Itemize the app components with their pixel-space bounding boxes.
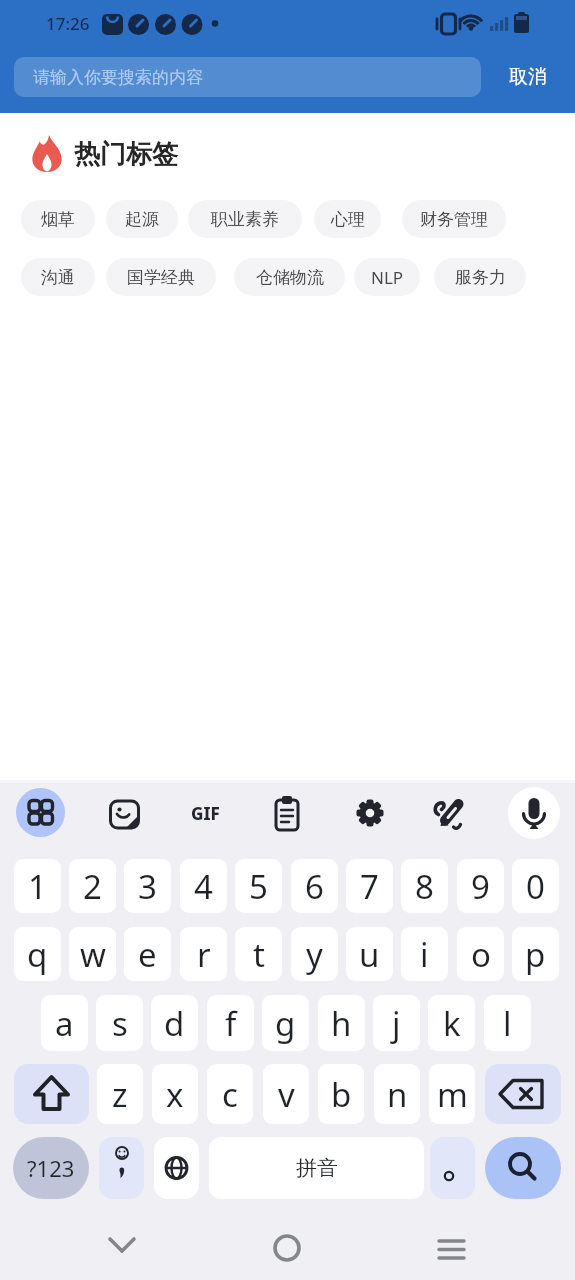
button[interactable]: u xyxy=(346,927,393,981)
staticText: 17:26 xyxy=(46,12,90,34)
button[interactable] xyxy=(508,787,560,839)
button[interactable]: d xyxy=(151,995,198,1051)
button[interactable]: 0 xyxy=(512,859,559,913)
staticText: 起源 xyxy=(125,209,159,230)
staticText: 8 xyxy=(415,864,434,909)
button[interactable] xyxy=(355,798,385,828)
staticText: 0 xyxy=(526,864,545,909)
button[interactable]: 财务管理 xyxy=(402,200,506,238)
button[interactable]: 7 xyxy=(346,859,393,913)
button[interactable]: 起源 xyxy=(106,200,178,238)
button[interactable] xyxy=(430,1137,475,1199)
button[interactable]: 服务力 xyxy=(434,258,526,296)
staticText: q xyxy=(27,932,48,977)
button[interactable]: v xyxy=(263,1064,309,1124)
button[interactable]: e xyxy=(124,927,171,981)
staticText: g xyxy=(275,1001,296,1046)
button[interactable] xyxy=(485,1064,561,1124)
staticText: 仓储物流 xyxy=(256,267,324,288)
button[interactable]: f xyxy=(207,995,254,1051)
button[interactable]: h xyxy=(318,995,365,1051)
button[interactable]: 心理 xyxy=(314,200,381,238)
button[interactable]: w xyxy=(69,927,116,981)
button[interactable]: i xyxy=(401,927,448,981)
button[interactable]: t xyxy=(235,927,282,981)
button[interactable]: NLP xyxy=(354,258,420,296)
button[interactable]: b xyxy=(318,1064,364,1124)
button[interactable]: l xyxy=(484,995,531,1051)
button[interactable]: 仓储物流 xyxy=(234,258,345,296)
button[interactable]: GIF xyxy=(180,795,230,832)
button[interactable]: c xyxy=(207,1064,253,1124)
button[interactable]: g xyxy=(262,995,309,1051)
button[interactable]: s xyxy=(96,995,143,1051)
button[interactable]: j xyxy=(373,995,420,1051)
staticText: p xyxy=(525,932,546,977)
button[interactable] xyxy=(270,793,304,834)
button[interactable] xyxy=(106,795,143,832)
button[interactable]: x xyxy=(152,1064,198,1124)
staticText: c xyxy=(222,1072,238,1117)
button[interactable] xyxy=(99,1137,144,1199)
button[interactable]: a xyxy=(41,995,88,1051)
button[interactable]: 8 xyxy=(401,859,448,913)
button[interactable]: 5 xyxy=(235,859,282,913)
button[interactable] xyxy=(14,1064,89,1124)
button[interactable]: ?123 xyxy=(13,1137,89,1199)
staticText: 取消 xyxy=(509,65,547,89)
staticText: t xyxy=(253,932,265,977)
button[interactable]: r xyxy=(180,927,227,981)
button[interactable] xyxy=(485,1137,561,1199)
button[interactable]: m xyxy=(429,1064,475,1124)
button[interactable]: 请输入你要搜索的内容 xyxy=(14,57,481,97)
staticText: u xyxy=(359,932,380,977)
button[interactable]: 沟通 xyxy=(21,258,95,296)
button[interactable]: 取消 xyxy=(494,57,562,97)
staticText: 7 xyxy=(360,864,379,909)
staticText: 3 xyxy=(138,864,157,909)
staticText: 5 xyxy=(249,864,268,909)
button[interactable] xyxy=(97,1221,147,1271)
button[interactable]: 3 xyxy=(124,859,171,913)
button[interactable] xyxy=(427,1221,477,1271)
button[interactable]: y xyxy=(291,927,338,981)
button[interactable]: 9 xyxy=(457,859,504,913)
staticText: v xyxy=(278,1072,295,1117)
staticText: j xyxy=(392,1001,401,1046)
button[interactable] xyxy=(262,1221,312,1271)
staticText: 请输入你要搜索的内容 xyxy=(33,67,203,88)
button[interactable]: o xyxy=(457,927,504,981)
staticText: r xyxy=(197,932,211,977)
button[interactable] xyxy=(432,793,468,835)
staticText: 9 xyxy=(471,864,490,909)
staticText: NLP xyxy=(371,266,404,289)
staticText: e xyxy=(138,932,157,977)
button[interactable]: 国学经典 xyxy=(106,258,216,296)
button[interactable]: n xyxy=(374,1064,420,1124)
button[interactable]: p xyxy=(512,927,559,981)
staticText: 国学经典 xyxy=(127,267,195,288)
button[interactable]: q xyxy=(14,927,61,981)
staticText: a xyxy=(55,1001,74,1046)
button[interactable] xyxy=(154,1137,199,1199)
staticText: 服务力 xyxy=(455,267,506,288)
staticText: 职业素养 xyxy=(211,209,279,230)
staticText: d xyxy=(164,1001,185,1046)
button[interactable]: 6 xyxy=(291,859,338,913)
button[interactable]: 2 xyxy=(69,859,116,913)
staticText: k xyxy=(443,1001,461,1046)
staticText: f xyxy=(225,1001,237,1046)
button[interactable]: 拼音 xyxy=(209,1137,424,1199)
button[interactable] xyxy=(16,788,65,837)
staticText: 4 xyxy=(194,864,213,909)
staticText: o xyxy=(471,932,491,977)
button[interactable]: z xyxy=(97,1064,143,1124)
button[interactable]: 职业素养 xyxy=(188,200,302,238)
staticText: y xyxy=(306,932,323,977)
button[interactable]: k xyxy=(428,995,475,1051)
button[interactable]: 1 xyxy=(14,859,61,913)
button[interactable]: 烟草 xyxy=(21,200,95,238)
button[interactable]: 4 xyxy=(180,859,227,913)
staticText: w xyxy=(80,932,106,977)
staticText: b xyxy=(331,1072,352,1117)
